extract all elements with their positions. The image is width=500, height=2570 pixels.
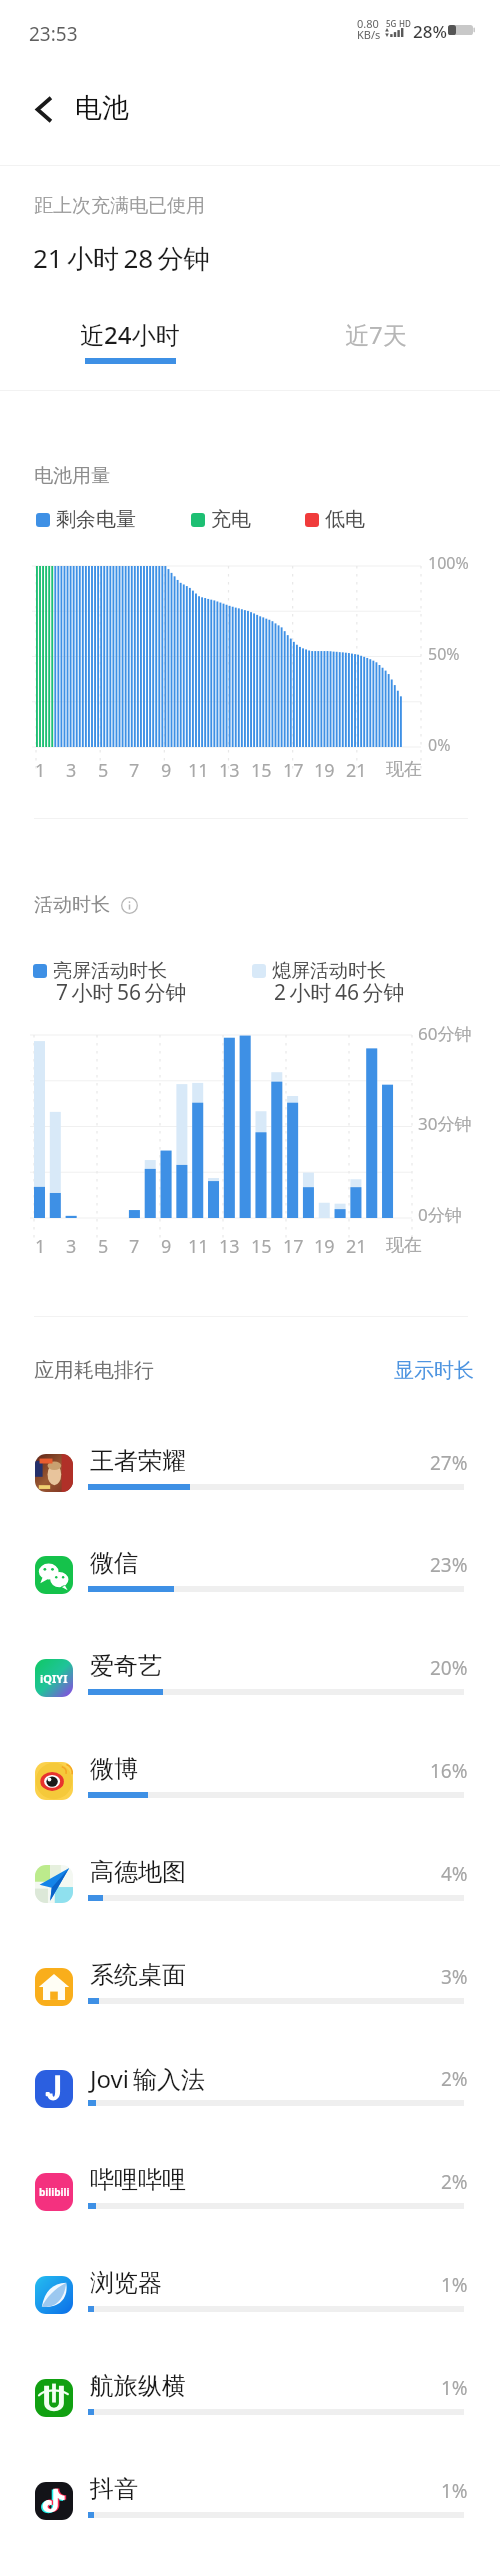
staticText: 熄屏活动时长 [272, 959, 386, 983]
button[interactable]: Back [22, 88, 64, 130]
button[interactable]: 王者荣耀 [0, 1429, 500, 1532]
staticText: 11 [188, 758, 209, 783]
staticText: 3 [66, 758, 77, 783]
staticText: 50% [428, 643, 460, 665]
staticText: 2% [441, 2066, 468, 2092]
staticText: Jovi 输入法 [90, 2062, 205, 2095]
staticText: 20% [430, 1655, 468, 1681]
staticText: 电池用量 [34, 464, 110, 488]
staticText: 1% [441, 2375, 468, 2401]
staticText: 近7天 [345, 318, 407, 351]
staticText: 28% [413, 20, 447, 43]
staticText: 5G [386, 18, 397, 29]
button[interactable]: 微信 [0, 1531, 500, 1634]
staticText: 15 [251, 758, 272, 783]
staticText: 低电 [325, 507, 365, 532]
staticText: 电池 [75, 91, 129, 125]
staticText: 4% [441, 1861, 468, 1887]
staticText: 2 小时 46 分钟 [274, 978, 405, 1007]
staticText: 15 [251, 1234, 272, 1259]
staticText: 17 [283, 758, 304, 783]
staticText: 浏览器 [90, 2268, 162, 2298]
button[interactable]: 微博 [0, 1737, 500, 1840]
staticText: 0% [428, 734, 451, 756]
staticText: 充电 [211, 507, 251, 532]
staticText: HD [399, 18, 411, 29]
staticText: 13 [219, 758, 240, 783]
staticText: 应用耗电排行 [34, 1358, 154, 1383]
staticText: 3 [66, 1234, 77, 1259]
staticText: 5 [98, 758, 109, 783]
staticText: 27% [430, 1450, 468, 1476]
staticText: 王者荣耀 [90, 1446, 186, 1476]
staticText: 微博 [90, 1754, 138, 1784]
button[interactable]: Jovi 输入法 [0, 2045, 500, 2148]
staticText: 抖音 [90, 2474, 138, 2504]
staticText: 21 [346, 758, 367, 783]
button[interactable]: 近24小时 [80, 318, 180, 364]
staticText: 100% [428, 552, 469, 574]
staticText: 微信 [90, 1548, 138, 1578]
staticText: 7 [129, 1234, 140, 1259]
staticText: bilibili [39, 2185, 70, 2199]
staticText: 0.80 [357, 16, 379, 31]
staticText: 21 [346, 1234, 367, 1259]
button[interactable]: 航旅纵横 [0, 2354, 500, 2457]
staticText: 60分钟 [418, 1022, 472, 1045]
staticText: 30分钟 [418, 1112, 472, 1135]
staticText: 1 [35, 1234, 46, 1259]
staticText: 11 [188, 1234, 209, 1259]
staticText: 系统桌面 [90, 1960, 186, 1990]
staticText: 16% [430, 1758, 468, 1784]
staticText: 亮屏活动时长 [53, 959, 167, 983]
staticText: 21 小时 28 分钟 [33, 240, 210, 276]
staticText: iQIYI [40, 1671, 68, 1686]
staticText: 19 [314, 1234, 335, 1259]
staticText: 剩余电量 [56, 507, 136, 532]
staticText: 5 [98, 1234, 109, 1259]
staticText: 17 [283, 1234, 304, 1259]
button[interactable]: 高德地图 [0, 1840, 500, 1943]
staticText: 航旅纵横 [90, 2371, 186, 2401]
staticText: 1 [35, 758, 46, 783]
staticText: 现在 [386, 1234, 422, 1257]
staticText: 活动时长 [34, 893, 110, 917]
staticText: 23:53 [29, 21, 78, 47]
staticText: 1% [441, 2478, 468, 2504]
staticText: KB/s [357, 27, 381, 42]
staticText: 显示时长 [394, 1358, 474, 1383]
staticText: 23% [430, 1552, 468, 1578]
staticText: 0分钟 [418, 1203, 462, 1226]
staticText: 近24小时 [80, 318, 180, 351]
staticText: 2% [441, 2169, 468, 2195]
staticText: 9 [161, 1234, 172, 1259]
staticText: 7 [129, 758, 140, 783]
button[interactable]: 系统桌面 [0, 1943, 500, 2046]
staticText: 高德地图 [90, 1857, 186, 1887]
staticText: 9 [161, 758, 172, 783]
staticText: 1% [441, 2272, 468, 2298]
button[interactable]: bilibili [0, 2148, 500, 2251]
staticText: 7 小时 56 分钟 [56, 978, 187, 1007]
button[interactable]: 抖音 [0, 2457, 500, 2560]
staticText: 现在 [386, 758, 422, 781]
button[interactable]: iQIYI [0, 1634, 500, 1737]
staticText: 哔哩哔哩 [90, 2165, 186, 2195]
staticText: 13 [219, 1234, 240, 1259]
button[interactable]: 显示时长 [394, 1358, 474, 1383]
staticText: 爱奇艺 [90, 1651, 162, 1681]
staticText: 3% [441, 1964, 468, 1990]
staticText: 19 [314, 758, 335, 783]
button[interactable]: 近7天 [345, 318, 407, 351]
staticText: 距上次充满电已使用 [34, 194, 205, 218]
button[interactable]: 浏览器 [0, 2251, 500, 2354]
